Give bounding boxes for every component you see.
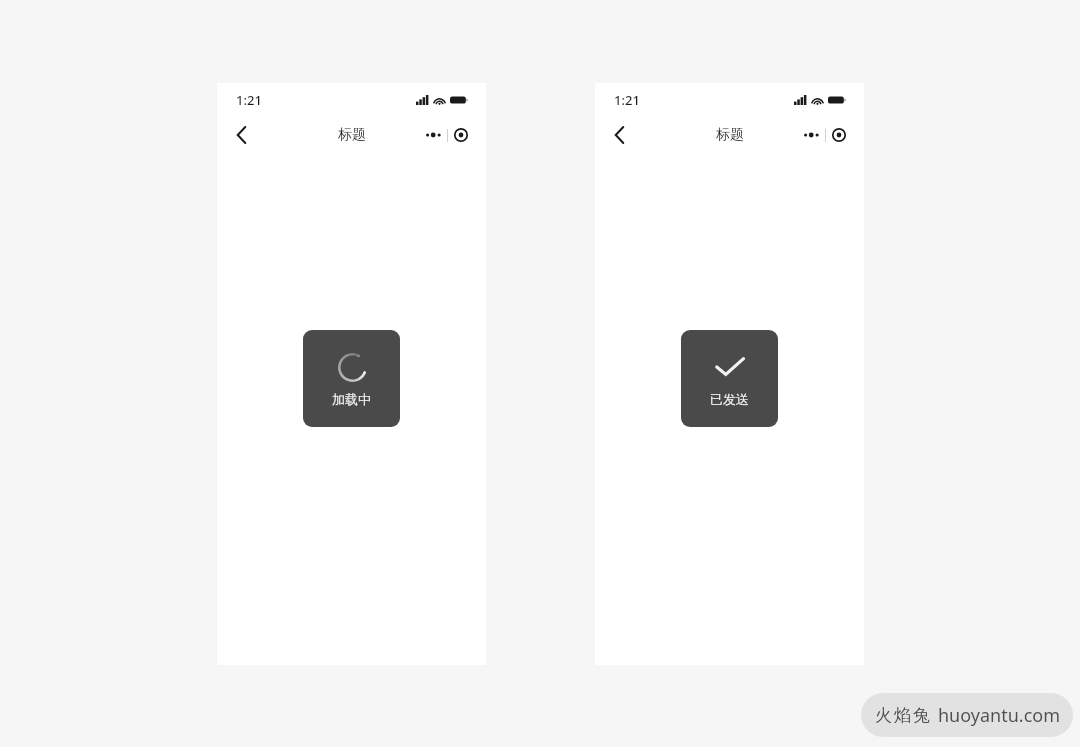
staticText: 1:21 [614,91,640,109]
staticText: 1:21 [236,91,262,109]
button[interactable]: More options [799,122,825,148]
button[interactable]: More options [421,122,447,148]
staticText: 标题 [716,126,744,144]
button[interactable]: Sent [681,330,778,427]
button[interactable]: Close [448,122,474,148]
button[interactable]: Back [603,119,635,151]
button[interactable]: Loading [303,330,400,427]
staticText: huoyantu.com [938,703,1060,728]
staticText: 标题 [338,126,366,144]
staticText: 火焰兔 [874,705,931,726]
button[interactable]: Close [826,122,852,148]
button[interactable]: Back [225,119,257,151]
staticText: 已发送 [710,391,749,407]
staticText: 加载中 [332,391,371,407]
